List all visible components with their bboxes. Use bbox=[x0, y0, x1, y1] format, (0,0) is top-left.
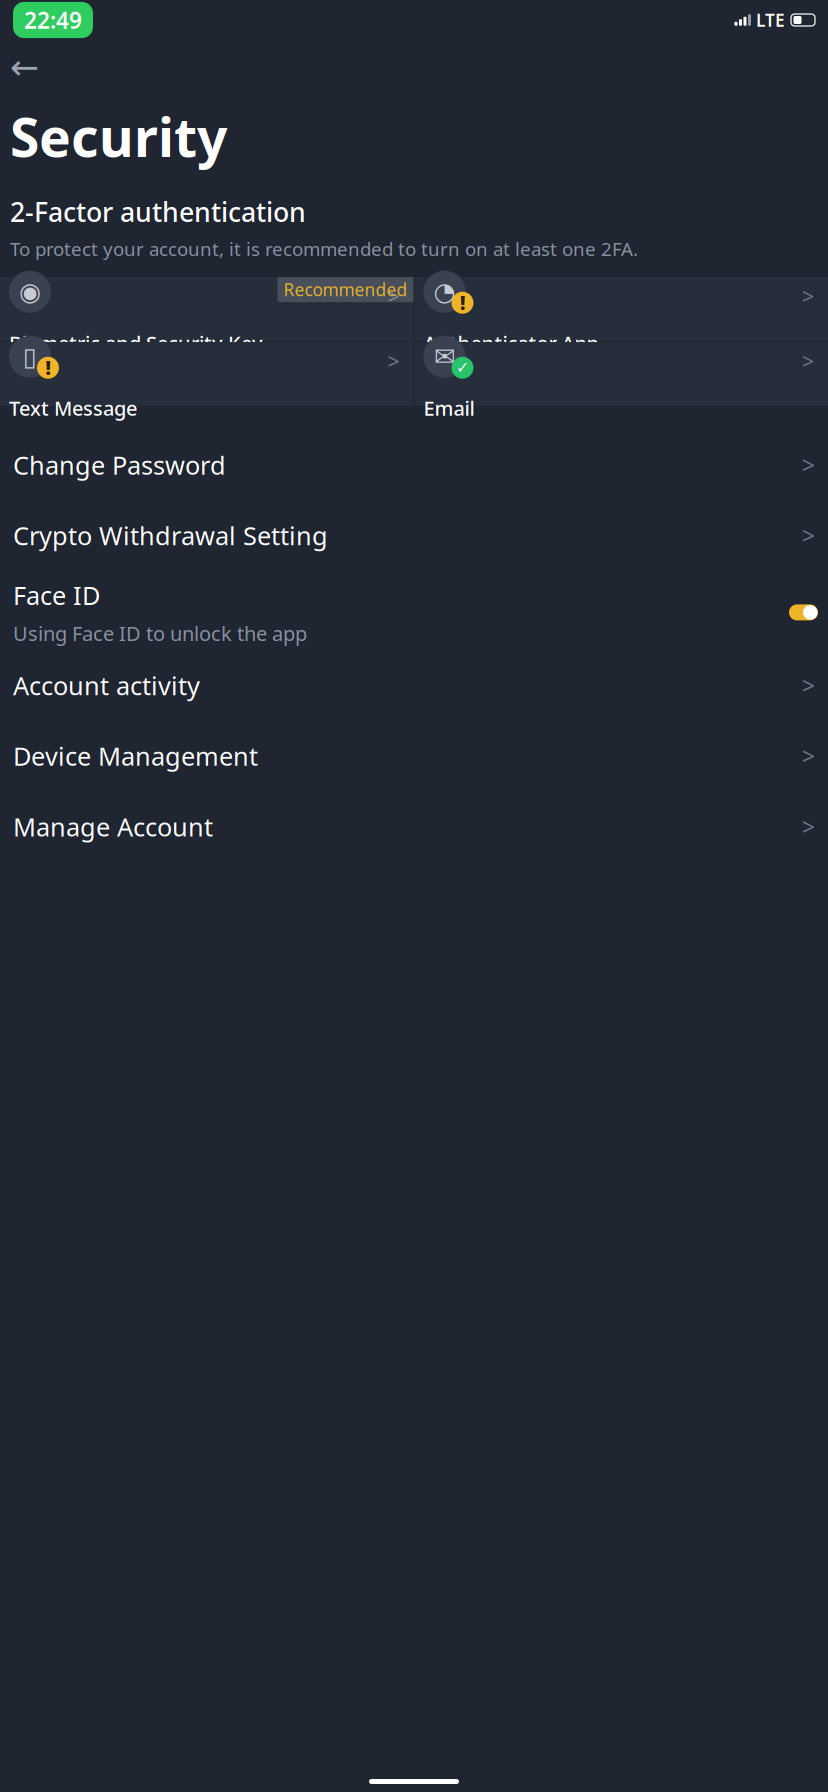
staticText: > bbox=[802, 520, 815, 550]
staticText: ◉ bbox=[19, 277, 41, 306]
staticText: ✓ bbox=[456, 359, 469, 377]
staticText: > bbox=[802, 741, 815, 771]
staticText: 2-Factor authentication bbox=[10, 194, 306, 229]
button[interactable]: ◔ bbox=[414, 277, 828, 341]
staticText: Security bbox=[10, 101, 227, 172]
staticText: ← bbox=[10, 47, 39, 87]
staticText: > bbox=[802, 450, 815, 480]
staticText: Recommended bbox=[283, 278, 407, 301]
staticText: > bbox=[802, 670, 815, 700]
button[interactable]: ◉ bbox=[0, 277, 413, 341]
staticText: Device Management bbox=[13, 739, 258, 773]
staticText: ! bbox=[45, 355, 50, 380]
staticText: Authenticator App bbox=[423, 330, 598, 356]
staticText: LTE bbox=[756, 8, 785, 31]
staticText: Face ID bbox=[13, 578, 100, 612]
button[interactable]: Change Password bbox=[0, 448, 828, 482]
staticText: Text Message bbox=[9, 395, 137, 421]
staticText: > bbox=[802, 347, 814, 375]
button[interactable]: Back bbox=[0, 47, 54, 87]
staticText: ! bbox=[460, 290, 465, 315]
button[interactable]: Crypto Withdrawal Setting bbox=[0, 519, 828, 552]
staticText: > bbox=[802, 812, 815, 842]
staticText: ◔ bbox=[433, 277, 455, 306]
staticText: Email bbox=[423, 395, 474, 421]
staticText: Crypto Withdrawal Setting bbox=[13, 519, 328, 552]
staticText: ✉ bbox=[434, 342, 455, 371]
button[interactable]: Device Management bbox=[0, 739, 828, 773]
staticText: Change Password bbox=[13, 448, 226, 482]
staticText: Manage Account bbox=[13, 810, 213, 843]
staticText: To protect your account, it is recommend… bbox=[10, 236, 638, 261]
button[interactable]: ▯ bbox=[0, 342, 413, 406]
staticText: Account activity bbox=[13, 668, 200, 702]
staticText: Biometric and Security Key bbox=[9, 330, 263, 356]
staticText: 22:49 bbox=[24, 5, 82, 35]
button[interactable]: Face ID bbox=[0, 578, 828, 646]
button[interactable]: Manage Account bbox=[0, 810, 828, 843]
staticText: > bbox=[802, 282, 814, 310]
staticText: > bbox=[387, 347, 399, 375]
button[interactable]: ✉ bbox=[414, 342, 828, 406]
button[interactable]: Account activity bbox=[0, 668, 828, 702]
staticText: > bbox=[387, 282, 399, 310]
staticText: ▯ bbox=[23, 342, 37, 371]
staticText: Using Face ID to unlock the app bbox=[13, 620, 307, 647]
